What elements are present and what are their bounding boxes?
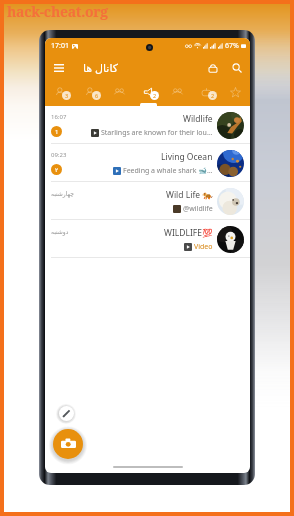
staticText: Living Ocean [161, 151, 213, 163]
staticText: Wild Life 🐅 [166, 189, 213, 201]
staticText: چهارشنبه [51, 190, 75, 197]
staticText: 2 [153, 92, 157, 99]
button[interactable] [221, 81, 250, 106]
staticText: Video [194, 242, 213, 252]
staticText: @wildlife [183, 204, 213, 214]
button[interactable]: دوشنبه [45, 220, 250, 258]
button[interactable]: 2 [192, 81, 221, 106]
staticText: hack-cheat.org [7, 2, 108, 21]
button[interactable]: 6 [75, 81, 105, 106]
staticText: 3 [65, 92, 69, 99]
staticText: 16:07 [51, 113, 67, 121]
staticText: Starlings are known for their lou… [101, 128, 213, 138]
button[interactable]: Search [229, 60, 245, 76]
staticText: 1 [55, 128, 59, 136]
staticText: 6 [95, 92, 99, 99]
button[interactable]: Open navigation drawer [51, 60, 67, 76]
staticText: دوشنبه [51, 228, 69, 235]
staticText: کانال ها [83, 60, 119, 75]
staticText: 17:01 [51, 41, 69, 51]
button[interactable] [163, 81, 192, 106]
staticText: ۲ [55, 166, 59, 173]
button[interactable]: 16:07 [45, 106, 250, 144]
button[interactable]: Camera [53, 429, 83, 459]
staticText: WILDLIFE💯 [164, 227, 213, 239]
staticText: Feeding a whale shark 🐋… [123, 166, 213, 176]
button[interactable]: 2 [134, 81, 163, 106]
button[interactable]: Compose message [59, 406, 74, 421]
staticText: 09:23 [51, 151, 67, 159]
button[interactable] [105, 81, 134, 106]
staticText: Wildlife [183, 113, 213, 125]
button[interactable]: 09:23 [45, 144, 250, 182]
button[interactable]: 3 [45, 81, 75, 106]
button[interactable]: Locked chats [205, 60, 221, 76]
button[interactable]: چهارشنبه [45, 182, 250, 220]
staticText: 67% [225, 41, 239, 51]
staticText: 2 [211, 92, 215, 99]
